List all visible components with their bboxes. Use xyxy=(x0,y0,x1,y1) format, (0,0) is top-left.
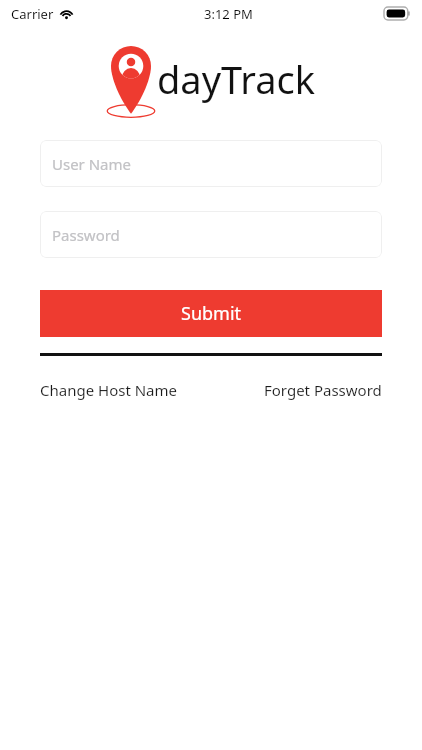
staticText: Submit xyxy=(181,301,242,326)
staticText: Carrier xyxy=(11,5,54,23)
staticText: Forget Password xyxy=(264,380,382,400)
button[interactable]: Submit xyxy=(40,290,382,337)
staticText: Change Host Name xyxy=(40,380,178,400)
staticText: Password xyxy=(52,225,120,245)
button[interactable]: Forget Password xyxy=(264,380,382,400)
other: Wi-Fi xyxy=(59,8,74,19)
button[interactable]: Change Host Name xyxy=(40,380,178,400)
staticText: dayTrack xyxy=(157,53,316,105)
staticText: 3:12 PM xyxy=(204,5,253,23)
staticText: User Name xyxy=(52,154,132,174)
button[interactable]: User Name xyxy=(40,140,382,187)
other: Battery full xyxy=(384,7,411,20)
button[interactable]: Password xyxy=(40,211,382,258)
